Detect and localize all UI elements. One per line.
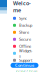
staticText: Continue — [15, 63, 34, 68]
staticText: Offline — [19, 44, 31, 49]
staticText: Welcome — [13, 0, 31, 14]
button[interactable]: Widgets — [8, 51, 40, 56]
button[interactable]: Continue — [10, 63, 38, 68]
button[interactable]: Sync — [8, 16, 40, 21]
staticText: Widgets — [19, 48, 32, 59]
staticText: Terms and Privacy — [15, 70, 37, 72]
staticText: Share — [19, 30, 29, 35]
staticText: Support — [19, 58, 32, 63]
staticText: Sync — [19, 16, 27, 21]
staticText: Backup — [19, 23, 32, 28]
button[interactable]: Support — [8, 58, 40, 63]
button[interactable]: Secure — [8, 37, 40, 42]
button[interactable]: Offline — [8, 44, 40, 49]
staticText: Secure — [19, 37, 31, 42]
button[interactable]: Share — [8, 30, 40, 35]
button[interactable]: Backup — [8, 23, 40, 28]
